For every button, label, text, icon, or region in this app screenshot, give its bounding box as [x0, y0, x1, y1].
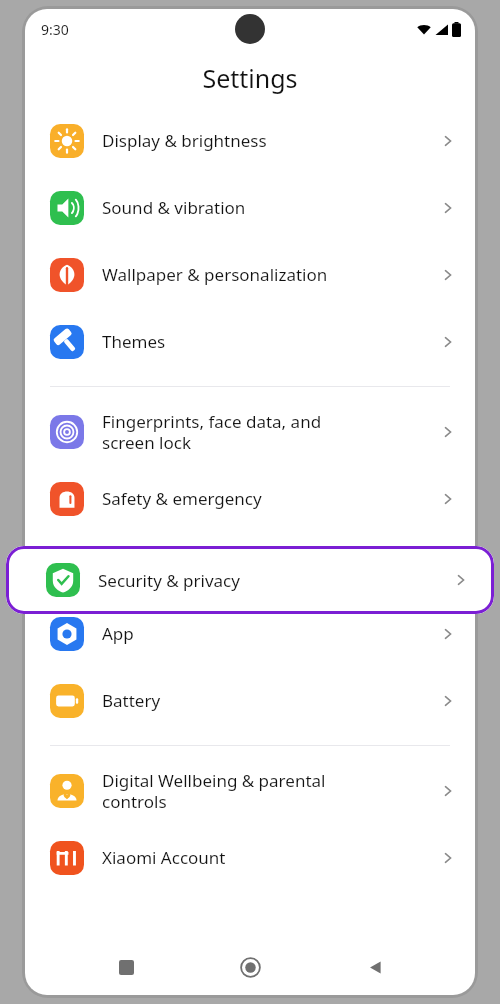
button[interactable]: Home [226, 943, 274, 991]
button[interactable]: App [25, 600, 475, 667]
button[interactable]: Xiaomi Account [25, 824, 475, 891]
staticText: Battery [102, 689, 161, 712]
staticText: Display & brightness [102, 129, 267, 152]
staticText: Xiaomi Account [102, 846, 226, 869]
button[interactable]: Wallpaper & personalization [25, 241, 475, 308]
button[interactable]: Fingerprints, face data, and screen lock [25, 398, 475, 465]
staticText: Digital Wellbeing & parental controls [102, 769, 326, 813]
staticText: App [102, 622, 134, 645]
button[interactable]: Back [351, 943, 399, 991]
button[interactable]: Safety & emergency [25, 465, 475, 532]
button[interactable]: Battery [25, 667, 475, 734]
staticText: Themes [102, 330, 166, 353]
button[interactable]: Security & privacy [6, 546, 494, 614]
button[interactable]: Sound & vibration [25, 174, 475, 241]
button[interactable]: Themes [25, 308, 475, 375]
button[interactable]: Display & brightness [25, 107, 475, 174]
staticText: Fingerprints, face data, and screen lock [102, 410, 322, 454]
staticText: Sound & vibration [102, 196, 246, 219]
staticText: Safety & emergency [102, 487, 262, 510]
staticText: Settings [202, 61, 298, 95]
staticText: Wallpaper & personalization [102, 263, 328, 286]
button[interactable]: Recent apps [102, 943, 150, 991]
button[interactable]: Digital Wellbeing & parental controls [25, 757, 475, 824]
staticText: Security & privacy [98, 569, 240, 592]
staticText: 9:30 [41, 20, 69, 39]
